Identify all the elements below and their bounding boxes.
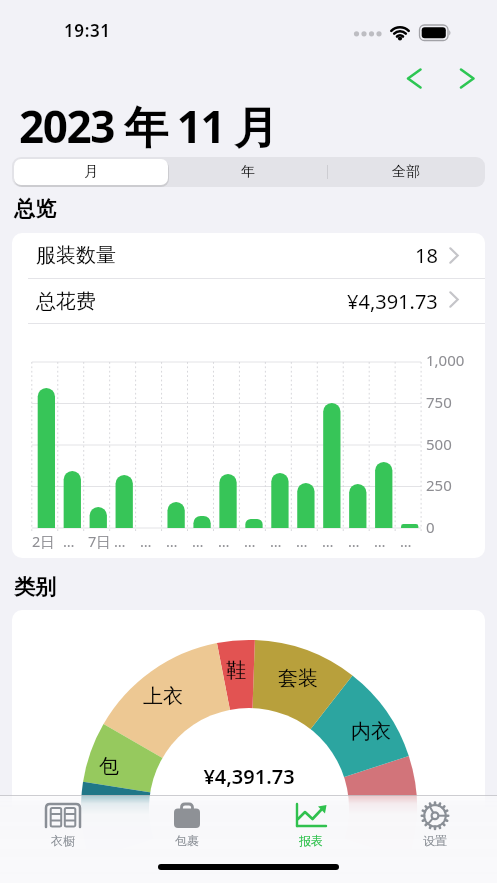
staticText: 上衣 xyxy=(143,684,183,709)
staticText: 套装 xyxy=(278,666,318,691)
staticText: 类别 xyxy=(14,574,56,600)
staticText: … xyxy=(244,531,256,551)
staticText: 0 xyxy=(426,517,435,537)
staticText: 衣橱 xyxy=(51,833,75,848)
staticText: 包裹 xyxy=(175,833,199,848)
staticText: … xyxy=(400,531,412,551)
button[interactable]: 全部 xyxy=(327,157,485,187)
staticText: … xyxy=(114,531,126,551)
staticText: 包 xyxy=(99,754,119,779)
staticText: … xyxy=(270,531,282,551)
staticText: 鞋 xyxy=(226,658,246,683)
staticText: 内衣 xyxy=(351,719,391,744)
staticText: 19:31 xyxy=(64,19,111,42)
staticText: 全部 xyxy=(392,163,420,181)
staticText: … xyxy=(63,531,75,551)
staticText: 2023 年 11 月 xyxy=(19,96,277,156)
staticText: 2日 xyxy=(32,531,55,551)
staticText: 1,000 xyxy=(426,350,465,370)
staticText: 750 xyxy=(426,392,452,412)
button[interactable] xyxy=(450,62,482,94)
staticText: 7日 xyxy=(88,531,111,551)
staticText: … xyxy=(140,531,152,551)
staticText: … xyxy=(192,531,204,551)
staticText: … xyxy=(374,531,386,551)
staticText: 500 xyxy=(426,434,452,454)
staticText: … xyxy=(166,531,178,551)
button[interactable]: 报表 xyxy=(249,795,373,855)
button[interactable]: 设置 xyxy=(373,795,497,855)
staticText: 总览 xyxy=(14,196,56,222)
button[interactable] xyxy=(398,62,430,94)
staticText: 报表 xyxy=(299,833,323,848)
staticText: … xyxy=(296,531,308,551)
staticText: … xyxy=(218,531,230,551)
staticText: 18 xyxy=(415,242,438,269)
button[interactable]: 月 xyxy=(12,157,169,187)
staticText: 服装数量 xyxy=(36,243,116,268)
button[interactable]: 总花费 xyxy=(12,279,485,323)
staticText: 设置 xyxy=(423,833,447,848)
staticText: ¥4,391.73 xyxy=(347,288,438,315)
button[interactable]: 服装数量 xyxy=(12,233,485,278)
staticText: … xyxy=(322,531,334,551)
staticText: 月 xyxy=(84,163,98,181)
button[interactable]: 年 xyxy=(169,157,327,187)
staticText: 年 xyxy=(241,163,255,181)
button[interactable]: 衣橱 xyxy=(0,795,125,855)
button[interactable]: 包裹 xyxy=(125,795,249,855)
staticText: … xyxy=(348,531,360,551)
staticText: 250 xyxy=(426,475,452,495)
staticText: 总花费 xyxy=(36,289,96,314)
staticText: ¥4,391.73 xyxy=(99,763,399,790)
